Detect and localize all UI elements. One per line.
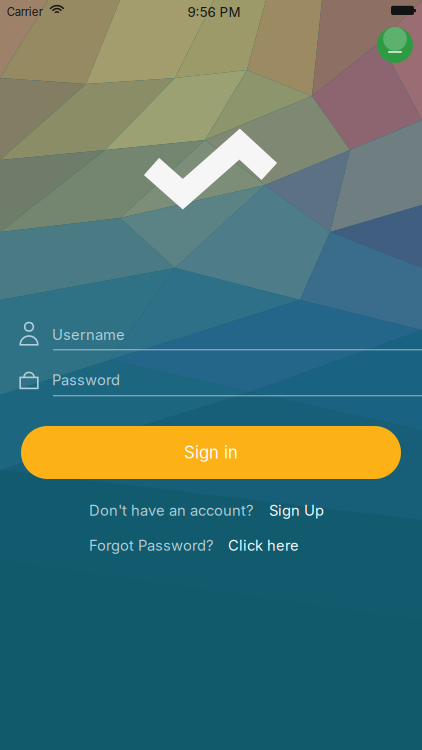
staticText: Don't have an account? bbox=[89, 501, 253, 519]
staticText: Carrier bbox=[7, 5, 43, 19]
staticText: 9:56 PM bbox=[187, 4, 240, 20]
button[interactable]: Sign Up bbox=[269, 501, 324, 519]
staticText: Click here bbox=[228, 537, 299, 554]
staticText: Forgot Password? bbox=[89, 537, 213, 554]
staticText: Username bbox=[52, 326, 125, 343]
button[interactable]: Sign in bbox=[21, 426, 401, 479]
button[interactable]: Verified bbox=[377, 27, 413, 63]
button[interactable]: Click here bbox=[228, 537, 299, 554]
staticText: Sign in bbox=[184, 442, 238, 463]
staticText: Password bbox=[52, 371, 120, 389]
staticText: Sign Up bbox=[269, 501, 324, 519]
